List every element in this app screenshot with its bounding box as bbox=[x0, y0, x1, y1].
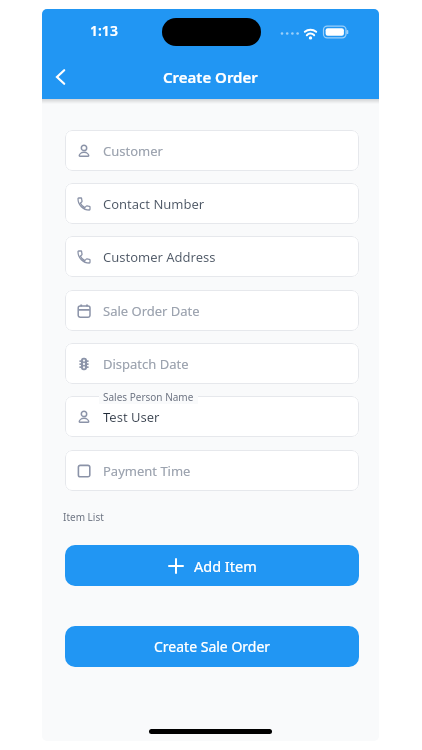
staticText: Customer Address bbox=[103, 248, 216, 266]
button[interactable]: Customer Address bbox=[65, 236, 359, 277]
staticText: Sale Order Date bbox=[103, 302, 200, 320]
staticText: Item List bbox=[63, 510, 104, 524]
button[interactable]: Payment Time bbox=[65, 450, 359, 491]
staticText: Create Sale Order bbox=[154, 637, 271, 656]
button[interactable]: Create Sale Order bbox=[65, 626, 359, 667]
staticText: Dispatch Date bbox=[103, 355, 189, 373]
button[interactable]: Dispatch Date bbox=[65, 343, 359, 384]
staticText: Create Order bbox=[163, 67, 258, 87]
staticText: Contact Number bbox=[103, 195, 205, 213]
staticText: Test User bbox=[103, 408, 160, 426]
staticText: Sales Person Name bbox=[103, 390, 194, 404]
button[interactable]: Sale Order Date bbox=[65, 290, 359, 331]
button[interactable] bbox=[46, 62, 74, 92]
staticText: Payment Time bbox=[103, 462, 191, 480]
staticText: Customer bbox=[103, 142, 163, 160]
staticText: Add Item bbox=[194, 556, 257, 576]
button[interactable]: Customer bbox=[65, 130, 359, 171]
staticText: 1:13 bbox=[90, 21, 118, 39]
button[interactable]: Contact Number bbox=[65, 183, 359, 224]
button[interactable]: Add Item bbox=[65, 545, 359, 586]
button[interactable]: Test User bbox=[65, 396, 359, 437]
